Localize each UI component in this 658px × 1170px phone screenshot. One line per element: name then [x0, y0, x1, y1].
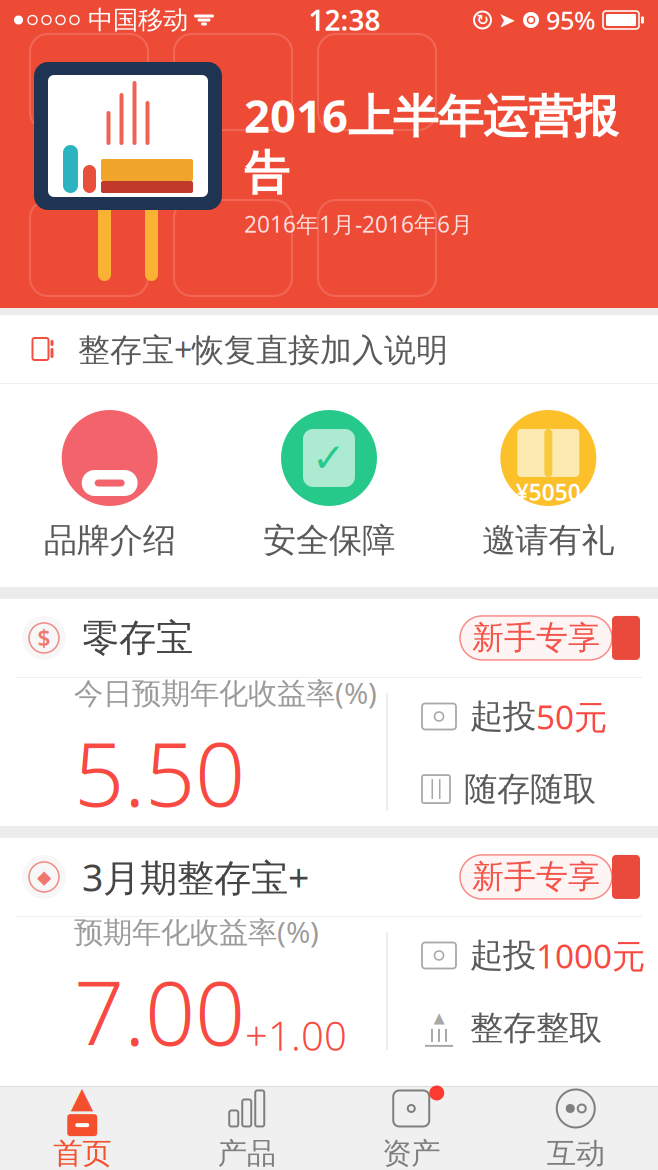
button[interactable]: 资产: [329, 1087, 493, 1170]
button[interactable]: ▲: [0, 1087, 164, 1170]
staticText: 品牌介绍: [44, 520, 176, 561]
staticText: 中国移动: [88, 4, 188, 35]
staticText: ➤: [498, 8, 516, 32]
button[interactable]: $: [0, 599, 658, 677]
staticText: 互动: [547, 1135, 605, 1170]
staticText: 7.00: [74, 953, 245, 1070]
button[interactable]: 互动: [493, 1087, 658, 1170]
staticText: 零存宝: [82, 615, 193, 661]
staticText: 随存随取: [464, 769, 596, 809]
staticText: 2016上半年运营报告: [244, 85, 618, 201]
staticText: 2016年1月-2016年6月: [244, 209, 473, 239]
staticText: 起投: [470, 696, 536, 737]
staticText: ▲: [71, 1081, 94, 1114]
button[interactable]: 产品: [164, 1087, 329, 1170]
staticText: 5.50: [74, 714, 245, 831]
button[interactable]: 整存宝+恢复直接加入说明: [0, 315, 658, 383]
staticText: 12:38: [308, 1, 380, 39]
staticText: 新手专享: [472, 618, 600, 658]
button[interactable]: 品牌介绍: [0, 404, 219, 567]
staticText: 起投: [470, 935, 536, 976]
staticText: 1000元: [536, 933, 645, 978]
staticText: ▲: [433, 1009, 444, 1026]
staticText: 今日预期年化收益率(%): [74, 673, 377, 712]
staticText: 邀请有礼: [482, 520, 614, 561]
staticText: 预期年化收益率(%): [74, 912, 319, 951]
staticText: 整存整取: [470, 1008, 602, 1048]
staticText: 资产: [382, 1135, 440, 1170]
staticText: ◆: [37, 866, 51, 887]
staticText: ↻: [476, 12, 488, 28]
staticText: +1.00: [245, 1009, 347, 1062]
staticText: ¥5050: [516, 477, 581, 507]
staticText: 首页: [53, 1135, 111, 1170]
staticText: $: [37, 623, 50, 653]
staticText: 50元: [536, 694, 607, 739]
button[interactable]: ◆: [0, 838, 658, 916]
staticText: 产品: [218, 1135, 276, 1170]
staticText: ✓: [312, 435, 346, 481]
staticText: 整存宝+恢复直接加入说明: [78, 328, 448, 370]
staticText: 3月期整存宝+: [82, 852, 309, 902]
button[interactable]: 预期年化收益率(%): [0, 917, 658, 1065]
button[interactable]: ¥5050: [439, 404, 658, 567]
staticText: 95%: [546, 3, 596, 37]
staticText: 新手专享: [472, 857, 600, 897]
button[interactable]: ✓: [219, 404, 439, 567]
button[interactable]: 今日预期年化收益率(%): [0, 678, 658, 826]
staticText: 安全保障: [263, 520, 395, 561]
